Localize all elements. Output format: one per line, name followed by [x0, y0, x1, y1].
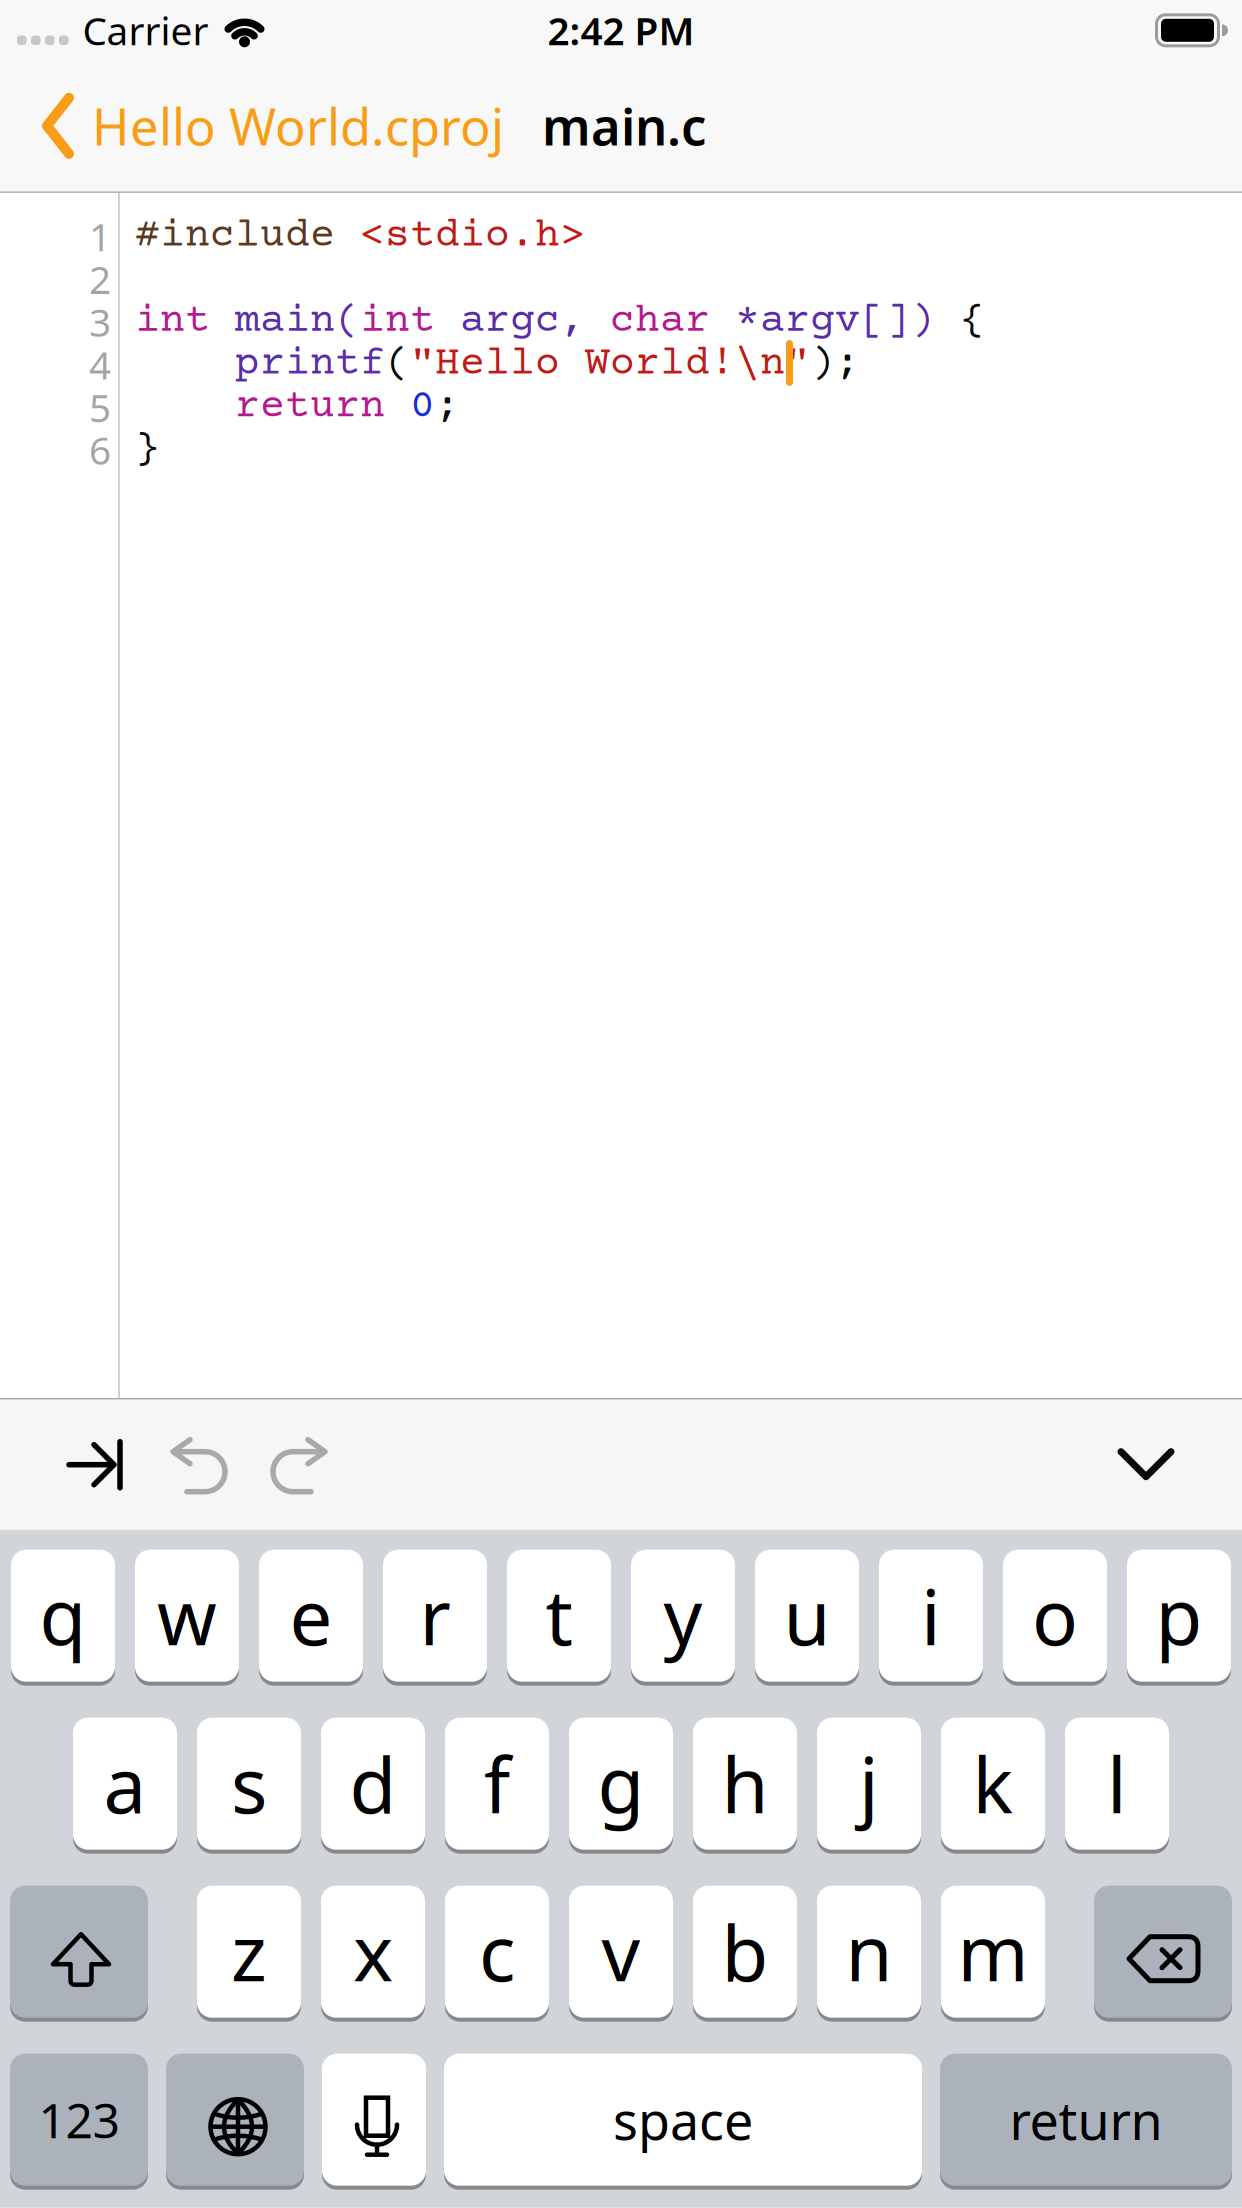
staticText: printf — [135, 341, 385, 388]
staticText: t — [545, 1565, 572, 1666]
button[interactable]: v — [569, 1886, 673, 2018]
staticText: l — [1107, 1733, 1127, 1834]
button[interactable]: p — [1127, 1550, 1231, 1682]
staticText: <stdio.h> — [335, 213, 585, 259]
staticText: x — [353, 1901, 393, 2002]
staticText: s — [231, 1733, 267, 1834]
button[interactable]: t — [507, 1550, 611, 1682]
staticText: argc, — [435, 298, 585, 345]
staticText: m — [957, 1901, 1028, 2002]
staticText: b — [721, 1901, 768, 2002]
button[interactable]: space — [444, 2054, 922, 2186]
staticText: Hello World.cproj — [92, 92, 504, 159]
button[interactable]: i — [879, 1550, 983, 1682]
staticText: n — [845, 1901, 892, 2002]
staticText: d — [349, 1733, 396, 1834]
button[interactable] — [322, 2054, 426, 2186]
button[interactable]: x — [321, 1886, 425, 2018]
button[interactable]: y — [631, 1550, 735, 1682]
staticText: p — [1155, 1565, 1202, 1666]
staticText: w — [157, 1565, 217, 1666]
staticText: int — [135, 298, 210, 345]
staticText: ); — [810, 341, 860, 388]
staticText: ( — [385, 341, 410, 388]
button[interactable]: e — [259, 1550, 363, 1682]
button[interactable]: j — [817, 1718, 921, 1850]
button[interactable]: 123 — [10, 2054, 148, 2186]
staticText: f — [484, 1733, 510, 1834]
staticText: *argv[]) — [710, 298, 935, 345]
staticText: 6 — [89, 424, 111, 475]
staticText: "Hello World!\n" — [410, 341, 810, 388]
button[interactable] — [1094, 1886, 1232, 2018]
staticText: h — [721, 1733, 768, 1834]
staticText: c — [479, 1901, 515, 2002]
staticText: main( — [210, 298, 360, 345]
staticText: #include — [135, 213, 335, 259]
button[interactable]: m — [941, 1886, 1045, 2018]
staticText: return — [135, 384, 385, 430]
staticText: main.c — [542, 92, 706, 159]
staticText: return — [1009, 2085, 1162, 2154]
staticText: j — [859, 1733, 879, 1834]
button[interactable]: d — [321, 1718, 425, 1850]
staticText: 2 — [89, 253, 111, 305]
staticText: u — [783, 1565, 830, 1666]
button[interactable]: s — [197, 1718, 301, 1850]
staticText: ; — [435, 384, 460, 430]
staticText: 4 — [89, 339, 111, 390]
staticText: 2:42 PM — [547, 5, 694, 56]
staticText: Carrier — [82, 5, 208, 56]
staticText: a — [103, 1733, 146, 1834]
staticText: k — [972, 1733, 1013, 1834]
button[interactable]: u — [755, 1550, 859, 1682]
button[interactable]: k — [941, 1718, 1045, 1850]
button[interactable]: o — [1003, 1550, 1107, 1682]
staticText: r — [419, 1565, 450, 1666]
button[interactable]: w — [135, 1550, 239, 1682]
staticText: space — [613, 2085, 753, 2154]
button[interactable]: a — [73, 1718, 177, 1850]
staticText: g — [597, 1733, 644, 1834]
button[interactable]: h — [693, 1718, 797, 1850]
button[interactable]: g — [569, 1718, 673, 1850]
staticText: 5 — [89, 381, 111, 433]
button[interactable] — [10, 1886, 148, 2018]
staticText: } — [135, 427, 160, 473]
staticText: 3 — [89, 296, 111, 347]
staticText: 1 — [89, 211, 111, 262]
button[interactable]: Hello World.cproj — [0, 92, 504, 159]
staticText: 0 — [385, 384, 435, 430]
button[interactable]: n — [817, 1886, 921, 2018]
staticText: char — [585, 298, 710, 345]
staticText: e — [289, 1565, 332, 1666]
button[interactable]: c — [445, 1886, 549, 2018]
staticText: v — [601, 1901, 640, 2002]
staticText: q — [39, 1565, 86, 1666]
button[interactable]: f — [445, 1718, 549, 1850]
button[interactable]: b — [693, 1886, 797, 2018]
staticText: o — [1032, 1565, 1078, 1666]
button[interactable] — [166, 2054, 304, 2186]
button[interactable]: q — [11, 1550, 115, 1682]
staticText: 123 — [38, 2088, 119, 2151]
button[interactable]: l — [1065, 1718, 1169, 1850]
staticText: { — [935, 298, 985, 345]
button[interactable]: z — [197, 1886, 301, 2018]
button[interactable]: r — [383, 1550, 487, 1682]
staticText: y — [663, 1565, 702, 1666]
staticText: int — [360, 298, 435, 345]
button[interactable]: return — [940, 2054, 1232, 2186]
staticText: z — [231, 1901, 267, 2002]
staticText: i — [921, 1565, 941, 1666]
